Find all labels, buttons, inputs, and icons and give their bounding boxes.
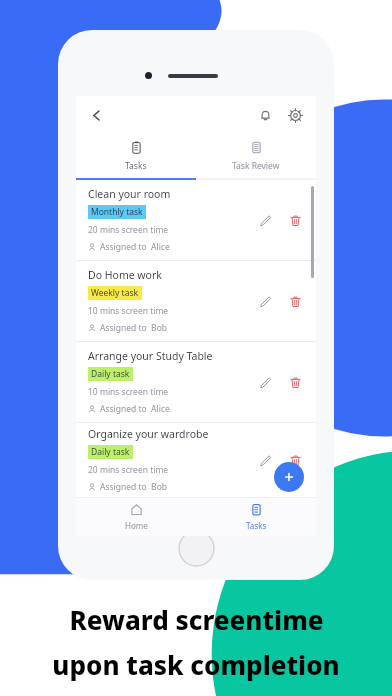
button[interactable]: Edit <box>252 288 278 314</box>
staticText: Do Home work <box>88 268 162 282</box>
button[interactable]: Add task <box>274 462 304 492</box>
button[interactable]: Back <box>86 105 106 125</box>
button[interactable]: Tasks <box>76 134 196 178</box>
button[interactable]: Edit <box>252 447 278 473</box>
staticText: 20 mins screen time <box>88 224 169 236</box>
button[interactable]: Do Home work <box>76 261 316 341</box>
button[interactable]: Organize your wardrobe <box>76 423 316 497</box>
staticText: Assigned to Alice <box>100 241 170 253</box>
staticText: Monthly task <box>91 206 143 218</box>
staticText: Home <box>125 520 148 531</box>
button[interactable]: Tasks <box>196 498 316 536</box>
staticText: Organize your wardrobe <box>88 427 209 441</box>
button[interactable]: Arrange your Study Table <box>76 342 316 422</box>
button[interactable]: Home <box>76 498 196 536</box>
staticText: 10 mins screen time <box>88 305 169 317</box>
staticText: Clean your room <box>88 187 171 201</box>
staticText: Assigned to Bob <box>100 481 168 493</box>
button[interactable]: Task Review <box>196 134 316 178</box>
staticText: 20 mins screen time <box>88 464 169 476</box>
staticText: 10 mins screen time <box>88 386 169 398</box>
button[interactable]: Edit <box>252 207 278 233</box>
button[interactable]: Edit <box>252 369 278 395</box>
staticText: Reward screentime <box>69 602 324 637</box>
staticText: Daily task <box>91 446 130 458</box>
staticText: Tasks <box>246 520 267 531</box>
staticText: Task Review <box>232 160 280 172</box>
staticText: Assigned to Bob <box>100 322 168 334</box>
button[interactable]: Delete <box>282 369 308 395</box>
button[interactable]: Delete <box>282 288 308 314</box>
staticText: Tasks <box>125 160 147 172</box>
staticText: Assigned to Alice <box>100 403 170 415</box>
button[interactable]: Clean your room <box>76 180 316 260</box>
button[interactable]: Settings <box>284 104 306 126</box>
staticText: Daily task <box>91 368 130 380</box>
button[interactable]: Delete <box>282 207 308 233</box>
staticText: Weekly task <box>91 287 139 299</box>
button[interactable]: Notifications <box>254 104 276 126</box>
staticText: upon task completion <box>52 647 340 682</box>
button[interactable]: Delete <box>282 447 308 473</box>
staticText: Arrange your Study Table <box>88 349 213 363</box>
